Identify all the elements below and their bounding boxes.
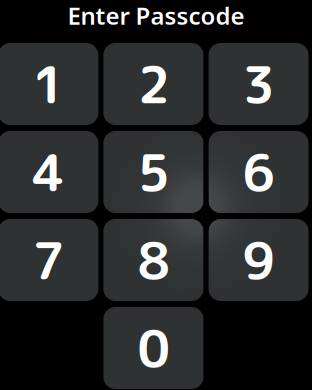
button[interactable]: 9: [209, 219, 309, 301]
button[interactable]: 3: [209, 43, 309, 125]
button[interactable]: 7: [0, 219, 98, 301]
button[interactable]: 6: [209, 131, 309, 213]
staticText: 8: [137, 225, 169, 295]
staticText: 0: [137, 313, 169, 383]
staticText: 3: [243, 49, 275, 119]
button[interactable]: 4: [0, 131, 98, 213]
button[interactable]: 0: [103, 307, 203, 389]
button[interactable]: 2: [103, 43, 203, 125]
staticText: 5: [137, 137, 169, 207]
staticText: Enter Passcode: [67, 0, 244, 32]
staticText: 4: [32, 137, 64, 207]
staticText: 6: [243, 137, 275, 207]
button[interactable]: 8: [103, 219, 203, 301]
staticText: 9: [243, 225, 275, 295]
button[interactable]: 5: [103, 131, 203, 213]
staticText: 2: [137, 49, 169, 119]
staticText: 1: [32, 49, 64, 119]
button[interactable]: 1: [0, 43, 98, 125]
staticText: 7: [32, 225, 64, 295]
